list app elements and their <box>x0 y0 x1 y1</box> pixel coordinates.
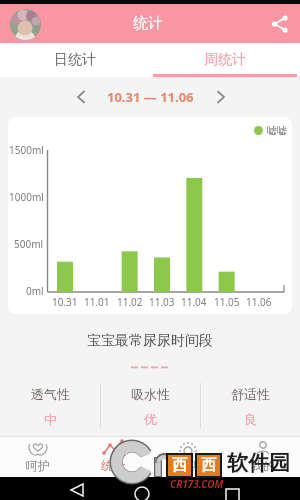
button[interactable]: 舒适性 <box>200 381 300 433</box>
staticText: 11.02 <box>117 295 143 309</box>
button[interactable] <box>209 86 231 108</box>
staticText: 舒适性 <box>231 386 270 402</box>
button[interactable] <box>70 86 92 108</box>
staticText: 嘘嘘 <box>267 124 287 137</box>
button[interactable] <box>10 9 41 40</box>
staticText: 宝宝最常尿尿时间段 <box>87 332 213 350</box>
staticText: 1500ml <box>9 143 44 157</box>
staticText: 0ml <box>26 284 44 298</box>
staticText: 11.06 <box>246 295 272 309</box>
staticText: CR173.COM <box>170 477 224 491</box>
staticText: 日统计 <box>54 51 96 69</box>
staticText: 提醒 <box>176 458 200 473</box>
staticText: 中 <box>44 411 57 427</box>
staticText: 西 <box>201 456 216 475</box>
staticText: 11.03 <box>149 295 175 309</box>
staticText: 500ml <box>14 237 44 251</box>
staticText: 1000ml <box>9 190 44 204</box>
staticText: 10.31 <box>52 295 78 309</box>
staticText: 软件园 <box>227 450 290 476</box>
staticText: 西 <box>172 456 187 475</box>
staticText: 周统计 <box>204 51 246 69</box>
staticText: 优 <box>144 411 157 427</box>
staticText: 11.01 <box>84 295 110 309</box>
staticText: 良 <box>244 411 257 427</box>
button[interactable]: 统计 <box>75 436 150 477</box>
button[interactable]: 周统计 <box>150 43 300 77</box>
staticText: 我的 <box>251 458 275 473</box>
staticText: 吸水性 <box>131 386 170 402</box>
staticText: 统计 <box>133 14 163 33</box>
button[interactable] <box>271 15 289 33</box>
button[interactable]: 透气性 <box>0 381 100 433</box>
staticText: 11.04 <box>181 295 207 309</box>
button[interactable]: 我的 <box>225 436 300 477</box>
staticText: 透气性 <box>31 386 70 402</box>
staticText: 呵护 <box>26 458 50 473</box>
button[interactable]: 日统计 <box>0 43 150 77</box>
button[interactable]: 提醒 <box>150 436 225 477</box>
button[interactable]: 吸水性 <box>100 381 200 433</box>
staticText: 10.31 — 11.06 <box>107 88 194 106</box>
staticText: 11.05 <box>214 295 240 309</box>
button[interactable]: 呵护 <box>0 436 75 477</box>
staticText: 统计 <box>101 458 125 473</box>
